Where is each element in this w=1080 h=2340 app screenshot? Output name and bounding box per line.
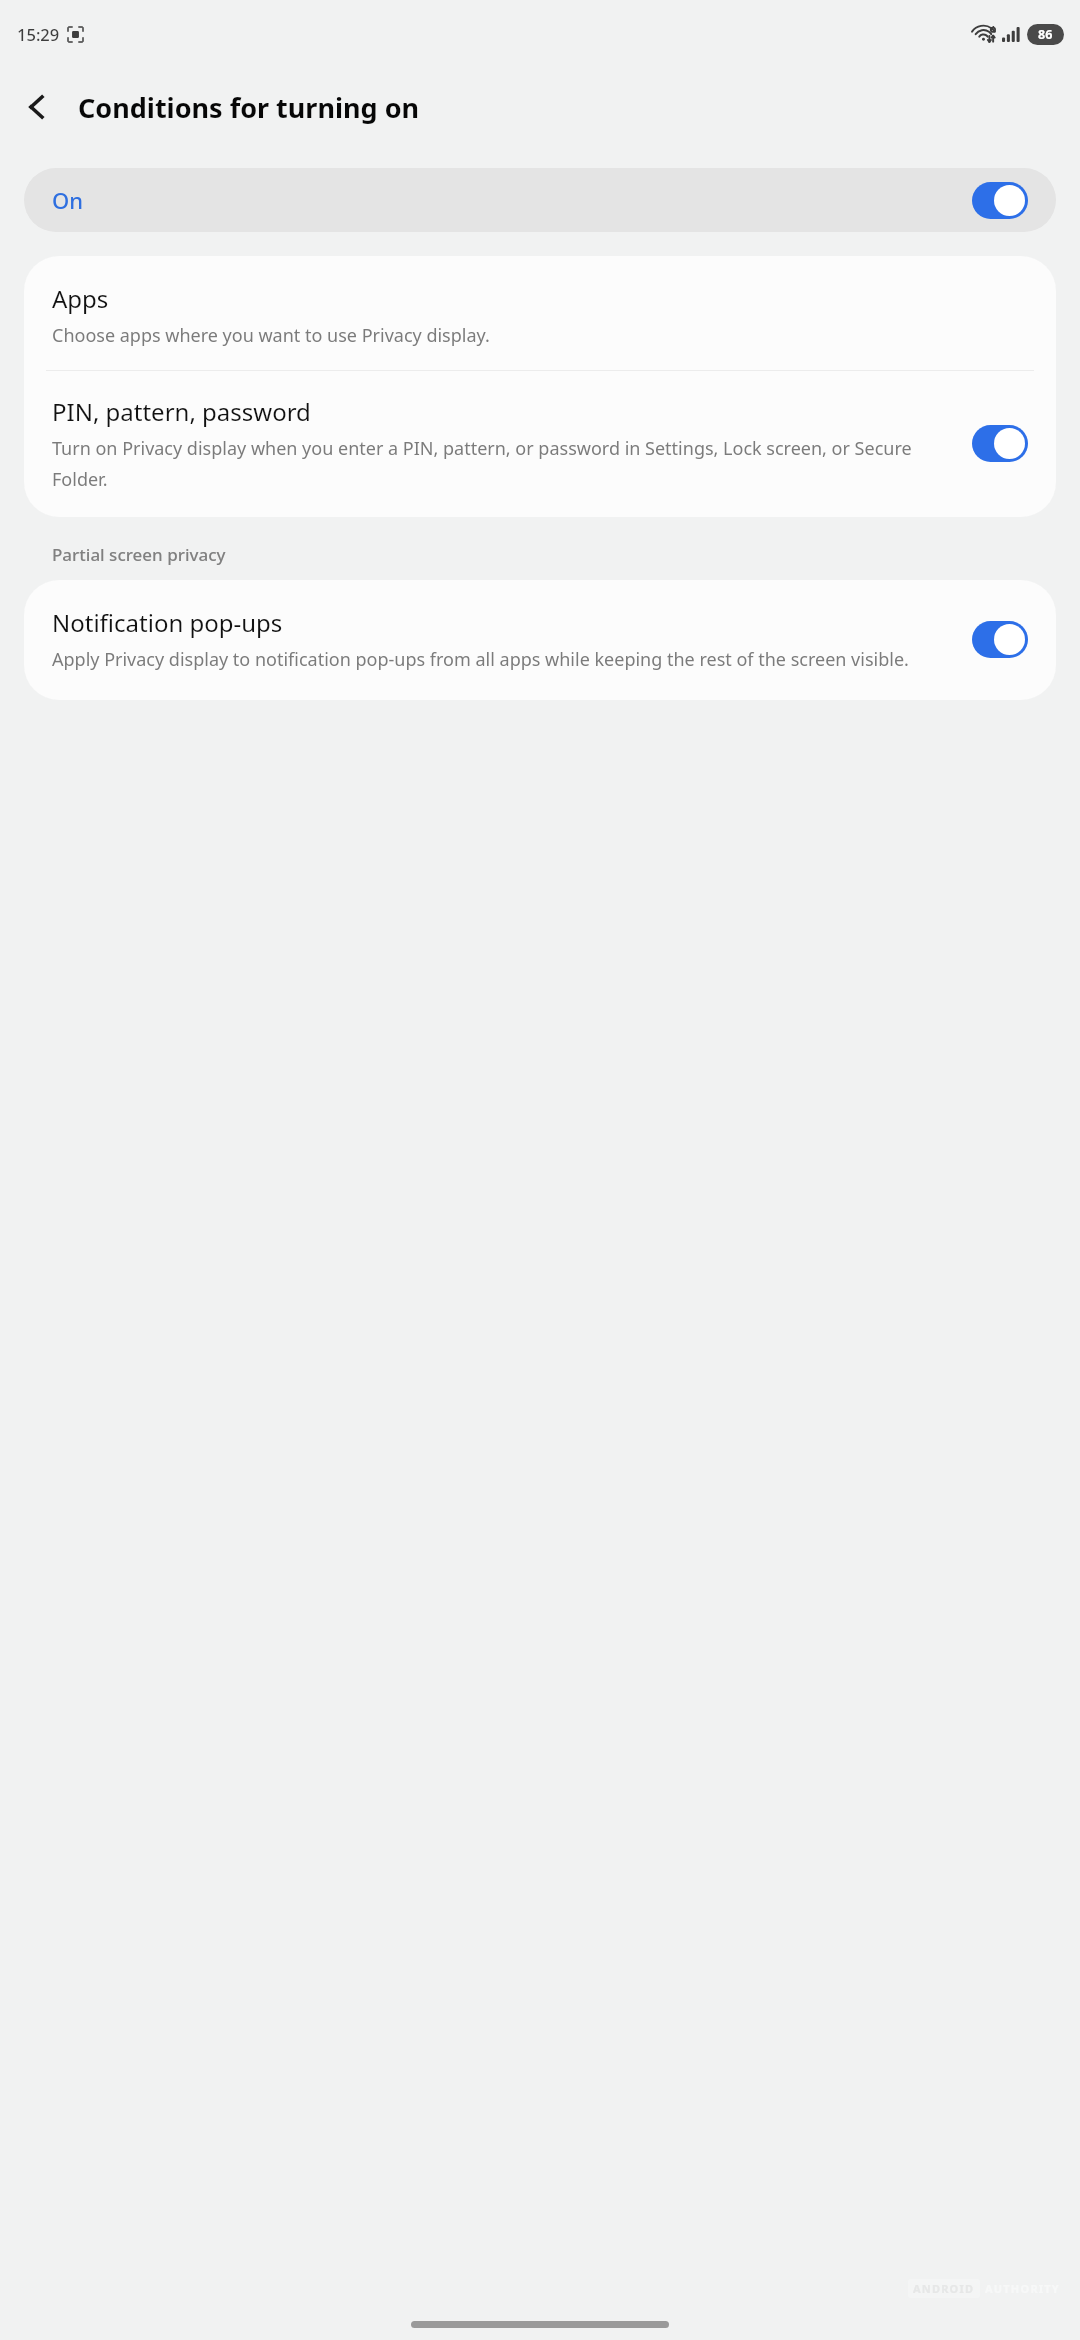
staticText: Apply Privacy display to notification po…: [52, 647, 909, 672]
staticText: Choose apps where you want to use Privac…: [52, 323, 490, 348]
button[interactable]: Toggle: [972, 621, 1028, 658]
staticText: Conditions for turning on: [78, 89, 420, 126]
staticText: PIN, pattern, password: [52, 395, 311, 428]
staticText: Apps: [52, 282, 109, 315]
button[interactable]: Notification pop-ups: [24, 580, 1056, 700]
staticText: On: [52, 185, 84, 215]
staticText: Partial screen privacy: [52, 543, 226, 566]
staticText: 86: [1038, 26, 1053, 43]
button[interactable]: Back: [12, 83, 60, 131]
staticText: Notification pop-ups: [52, 606, 283, 639]
button[interactable]: Toggle: [972, 182, 1028, 219]
button[interactable]: PIN, pattern, password: [24, 371, 1056, 517]
staticText: Turn on Privacy display when you enter a…: [52, 436, 954, 491]
button[interactable]: Apps: [24, 256, 1056, 370]
button[interactable]: On: [24, 168, 1056, 232]
button[interactable]: Toggle: [972, 425, 1028, 462]
staticText: ANDROID: [913, 2281, 975, 2296]
staticText: 15:29: [17, 23, 60, 45]
